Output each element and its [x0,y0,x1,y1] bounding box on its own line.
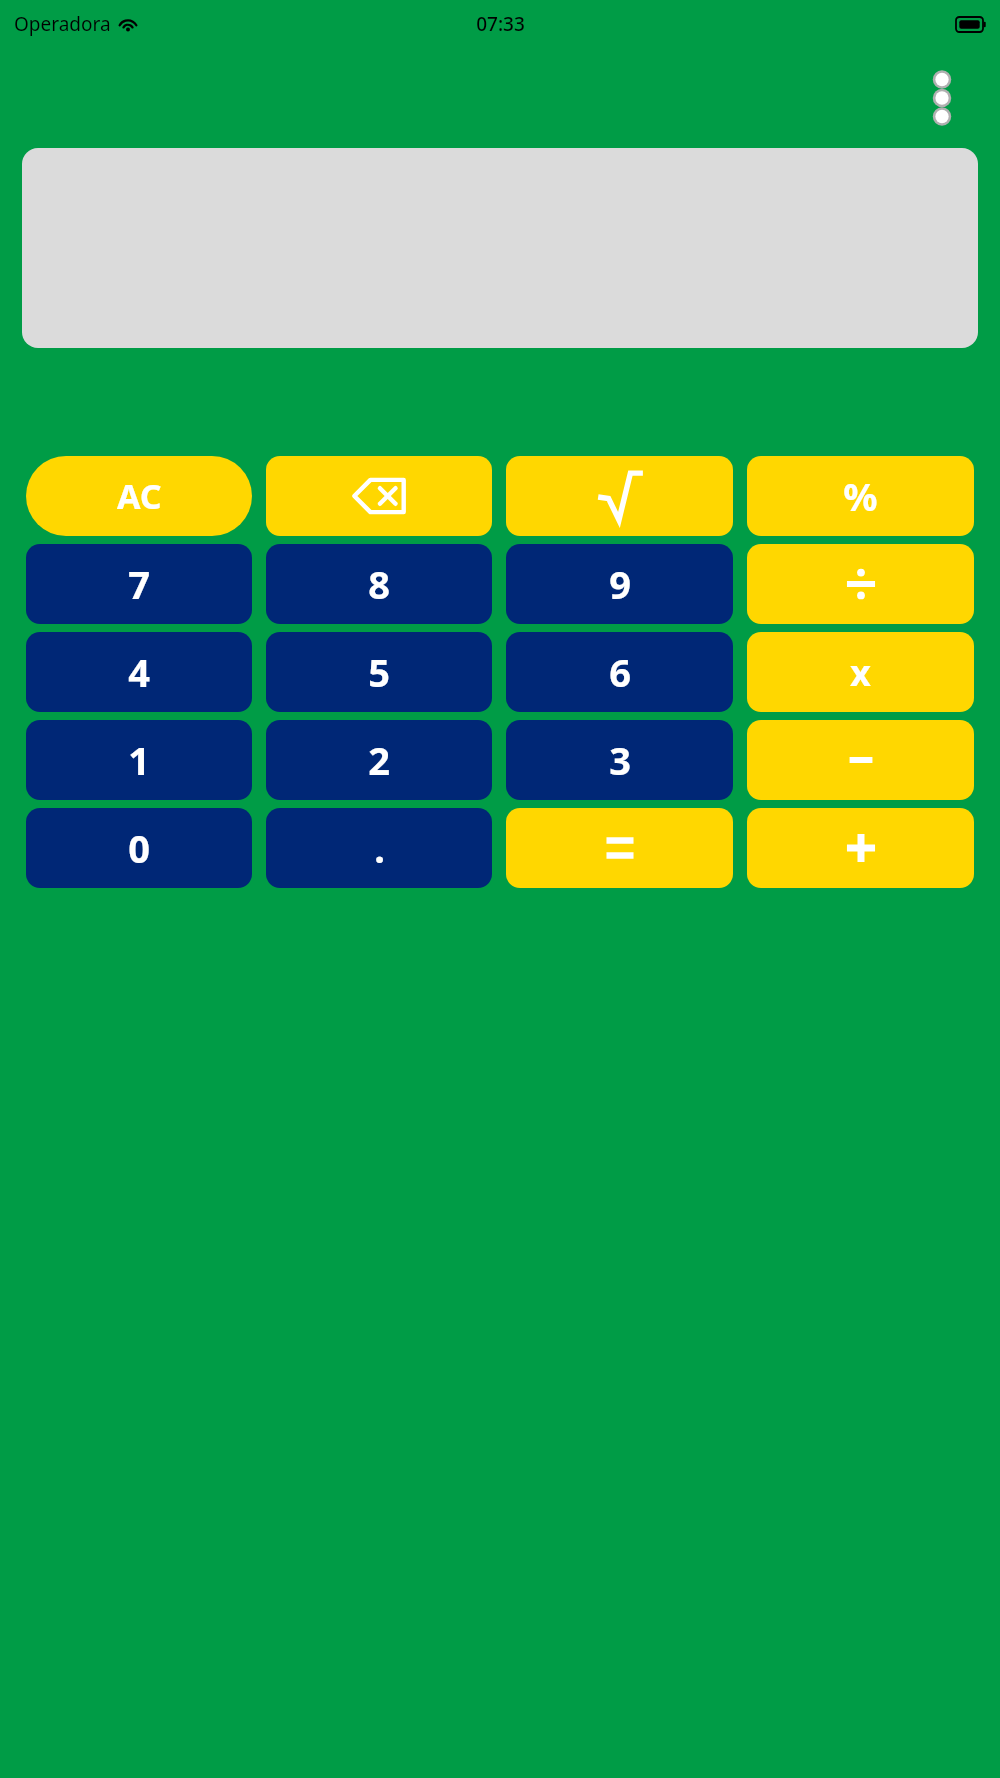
staticText: 4 [128,646,150,698]
staticText: . [374,822,385,874]
button[interactable]: % [747,456,974,536]
staticText: 8 [368,558,390,610]
button[interactable]: Plus [747,808,974,888]
staticText: 1 [128,734,150,786]
staticText: 5 [368,646,390,698]
button[interactable]: 6 [506,632,733,712]
button[interactable]: Backspace [266,456,492,536]
staticText: 07:33 [476,11,525,37]
staticText: AC [117,473,162,519]
button[interactable]: Equals [506,808,733,888]
button[interactable]: x [747,632,974,712]
button[interactable]: 8 [266,544,492,624]
staticText: 6 [609,646,631,698]
button[interactable] [22,148,978,348]
staticText: Operadora [14,11,111,37]
button[interactable]: More options [914,70,970,126]
button[interactable]: 1 [26,720,252,800]
button[interactable]: 9 [506,544,733,624]
button[interactable]: . [266,808,492,888]
button[interactable]: 2 [266,720,492,800]
button[interactable]: AC [26,456,252,536]
button[interactable]: Minus [747,720,974,800]
button[interactable]: Square root [506,456,733,536]
staticText: 3 [609,734,631,786]
staticText: % [843,470,878,522]
staticText: 7 [128,558,150,610]
staticText: 9 [609,558,631,610]
button[interactable]: 7 [26,544,252,624]
button[interactable]: 3 [506,720,733,800]
button[interactable]: 0 [26,808,252,888]
button[interactable]: 5 [266,632,492,712]
button[interactable]: Divide [747,544,974,624]
button[interactable]: 4 [26,632,252,712]
staticText: x [850,648,871,697]
staticText: 2 [368,734,390,786]
staticText: 0 [128,822,150,874]
